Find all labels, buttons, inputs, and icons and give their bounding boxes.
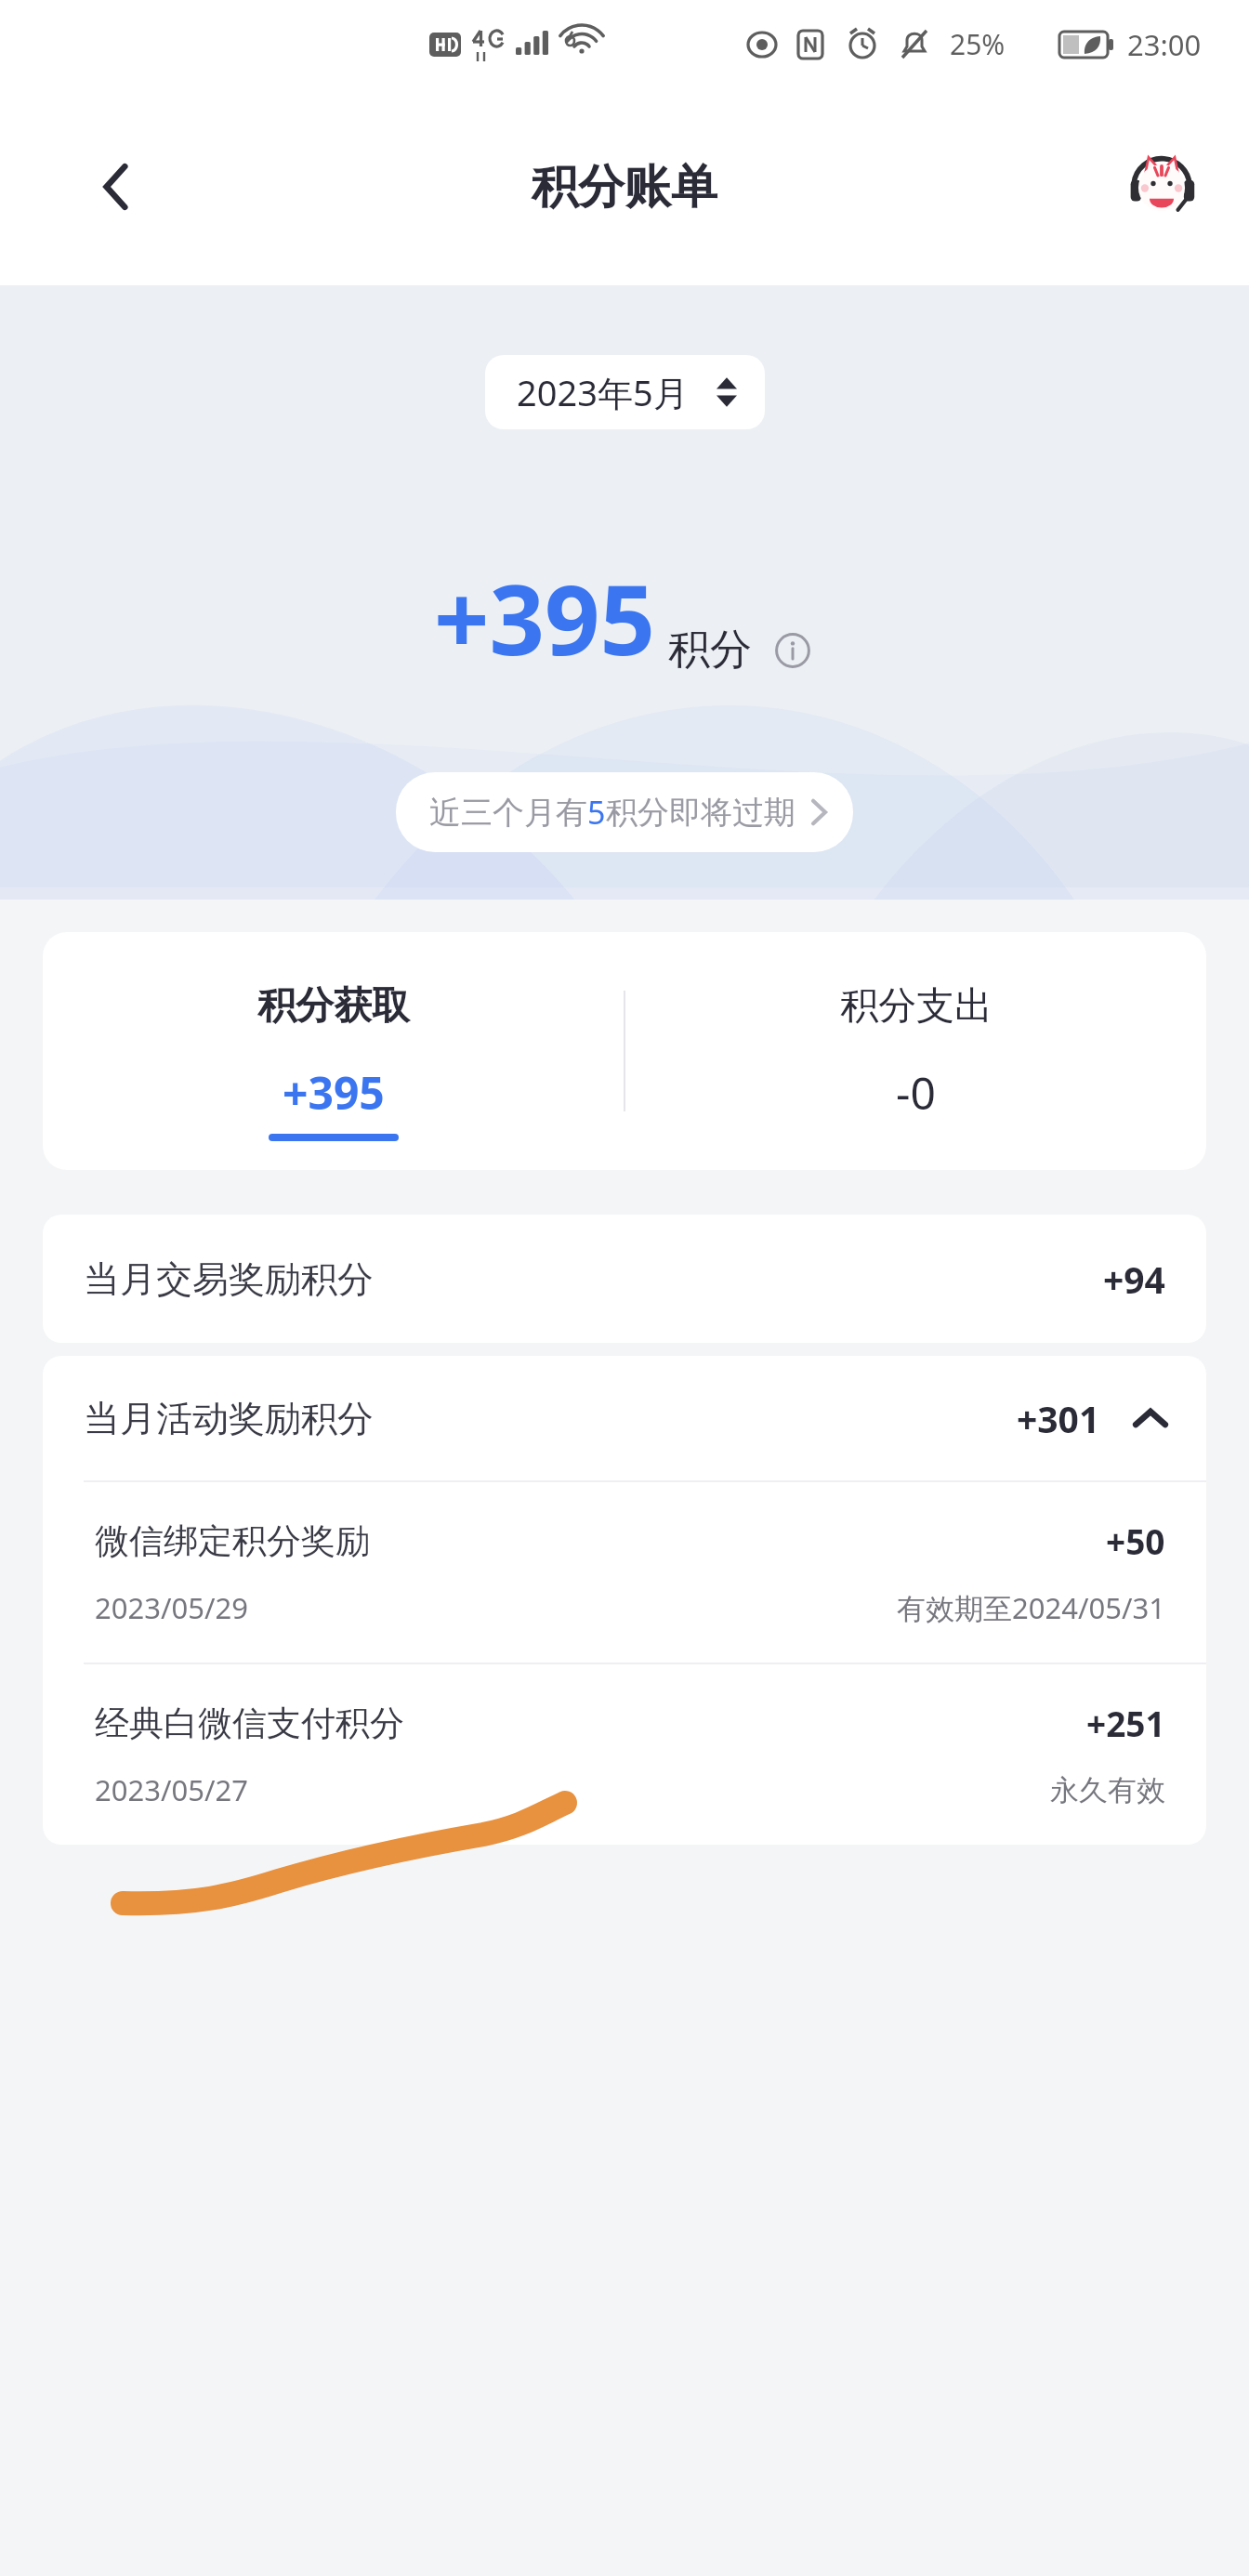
button[interactable]: 积分获取: [43, 932, 624, 1170]
button[interactable]: 2023年5月: [485, 355, 765, 429]
staticText: 积分账单: [532, 158, 717, 217]
staticText: 积分: [668, 624, 752, 677]
button[interactable]: 经典白微信支付积分: [43, 1664, 1206, 1845]
staticText: 5: [587, 791, 606, 834]
staticText: 近三个月有: [429, 793, 587, 833]
staticText: 有效期至2024/05/31: [897, 1588, 1165, 1627]
staticText: 积分即将过期: [606, 793, 795, 833]
button[interactable]: 当月交易奖励积分: [43, 1215, 1206, 1343]
staticText: 2023/05/27: [95, 1770, 248, 1809]
staticText: 积分获取: [257, 982, 410, 1031]
staticText: 23:00: [1127, 25, 1202, 64]
staticText: +395: [283, 1062, 385, 1123]
staticText: 永久有效: [1050, 1772, 1165, 1808]
button[interactable]: 当月活动奖励积分: [43, 1356, 1206, 1480]
staticText: 经典白微信支付积分: [95, 1702, 404, 1745]
button[interactable]: 微信绑定积分奖励: [43, 1482, 1206, 1663]
staticText: +251: [1086, 1700, 1165, 1746]
staticText: +94: [1103, 1255, 1165, 1304]
staticText: 当月活动奖励积分: [84, 1396, 374, 1441]
other: 收起: [1128, 1396, 1173, 1440]
staticText: +50: [1106, 1518, 1165, 1564]
staticText: 当月交易奖励积分: [84, 1256, 374, 1302]
button[interactable]: 积分说明: [770, 628, 815, 673]
staticText: -0: [896, 1062, 936, 1123]
button[interactable]: 返回: [76, 146, 158, 228]
staticText: 2023/05/29: [95, 1588, 248, 1627]
staticText: +395: [434, 552, 655, 684]
staticText: 2023年5月: [517, 368, 689, 416]
staticText: 积分支出: [840, 982, 993, 1031]
staticText: 25%: [950, 25, 1006, 63]
button[interactable]: 近三个月有: [396, 772, 853, 852]
button[interactable]: 客服: [1123, 148, 1201, 226]
staticText: 微信绑定积分奖励: [95, 1519, 370, 1563]
button[interactable]: 积分支出: [625, 932, 1206, 1170]
staticText: +301: [1017, 1394, 1100, 1443]
